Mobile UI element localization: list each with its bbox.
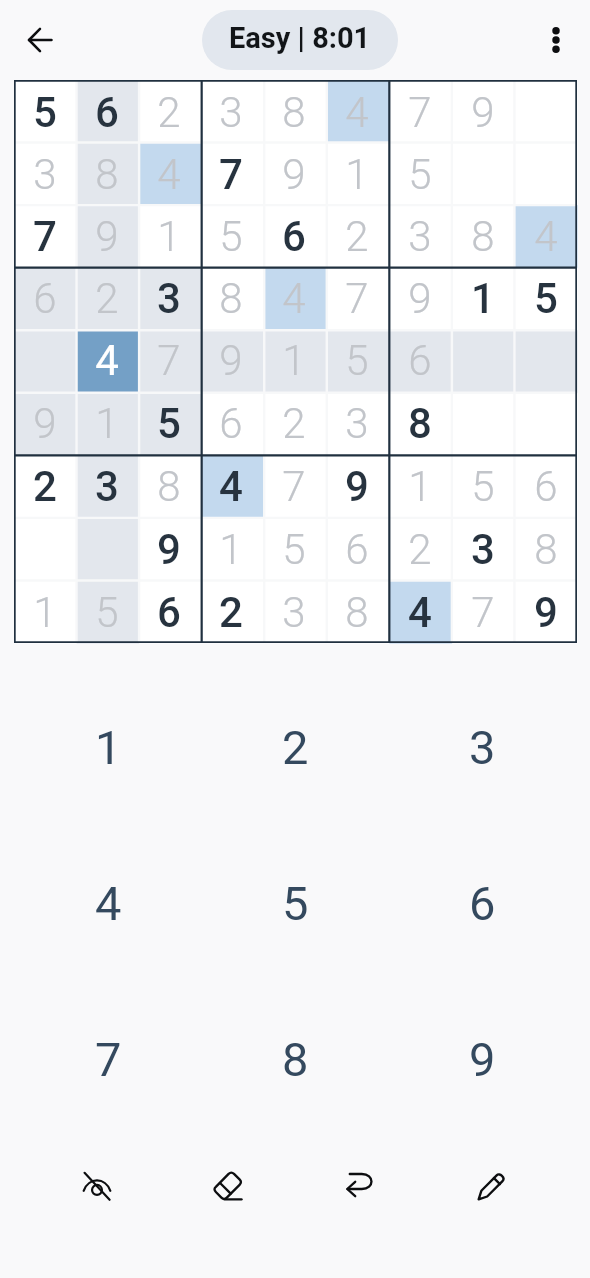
- button[interactable]: 7: [262, 454, 325, 517]
- staticText: 6: [33, 274, 57, 323]
- button[interactable]: 3: [389, 669, 576, 825]
- button[interactable]: [451, 328, 514, 391]
- button[interactable]: 8: [262, 80, 325, 142]
- button[interactable]: 2: [14, 454, 76, 517]
- button[interactable]: 8: [138, 454, 200, 517]
- button[interactable]: 4: [200, 454, 262, 517]
- button[interactable]: 7: [388, 80, 451, 142]
- button[interactable]: Notes: [426, 1156, 558, 1216]
- button[interactable]: 6: [262, 204, 325, 266]
- button[interactable]: 8: [325, 580, 388, 643]
- staticText: 3: [408, 212, 432, 261]
- button[interactable]: 1: [325, 142, 388, 204]
- button[interactable]: 4: [14, 825, 202, 981]
- button[interactable]: Easy | 8:01: [202, 10, 398, 70]
- button[interactable]: 5: [514, 266, 577, 328]
- button[interactable]: 7: [14, 981, 202, 1137]
- button[interactable]: 3: [138, 266, 200, 328]
- button[interactable]: 6: [200, 391, 262, 454]
- button[interactable]: 9: [262, 142, 325, 204]
- button[interactable]: [514, 142, 577, 204]
- button[interactable]: 3: [388, 204, 451, 266]
- button[interactable]: 3: [76, 454, 138, 517]
- button[interactable]: 5: [262, 517, 325, 580]
- button[interactable]: 1: [138, 204, 200, 266]
- button[interactable]: 9: [451, 80, 514, 142]
- button[interactable]: 4: [514, 204, 577, 266]
- button[interactable]: 8: [451, 204, 514, 266]
- button[interactable]: [514, 80, 577, 142]
- button[interactable]: 6: [14, 266, 76, 328]
- button[interactable]: 2: [325, 204, 388, 266]
- button[interactable]: 1: [200, 517, 262, 580]
- button[interactable]: 1: [388, 454, 451, 517]
- button[interactable]: 1: [14, 580, 76, 643]
- button[interactable]: 7: [14, 204, 76, 266]
- button[interactable]: [514, 328, 577, 391]
- button[interactable]: 4: [388, 580, 451, 643]
- button[interactable]: 9: [325, 454, 388, 517]
- button[interactable]: Erase: [162, 1156, 294, 1216]
- button[interactable]: 5: [200, 204, 262, 266]
- button[interactable]: 8: [76, 142, 138, 204]
- button[interactable]: 9: [138, 517, 200, 580]
- button[interactable]: 2: [262, 391, 325, 454]
- button[interactable]: 9: [388, 266, 451, 328]
- button[interactable]: 9: [14, 391, 76, 454]
- button[interactable]: 8: [202, 981, 389, 1137]
- button[interactable]: [76, 517, 138, 580]
- button[interactable]: 1: [14, 669, 202, 825]
- button[interactable]: 4: [325, 80, 388, 142]
- button[interactable]: 1: [451, 266, 514, 328]
- button[interactable]: 2: [200, 580, 262, 643]
- button[interactable]: 5: [202, 825, 389, 981]
- button[interactable]: 6: [138, 580, 200, 643]
- button[interactable]: More options: [530, 14, 582, 66]
- button[interactable]: Back: [14, 14, 66, 66]
- button[interactable]: 8: [200, 266, 262, 328]
- staticText: 5: [345, 336, 369, 385]
- button[interactable]: 5: [76, 580, 138, 643]
- button[interactable]: 4: [138, 142, 200, 204]
- button[interactable]: 5: [14, 80, 76, 142]
- button[interactable]: [14, 328, 76, 391]
- button[interactable]: 9: [389, 981, 576, 1137]
- button[interactable]: 7: [451, 580, 514, 643]
- button[interactable]: 2: [388, 517, 451, 580]
- button[interactable]: 1: [76, 391, 138, 454]
- button[interactable]: 8: [388, 391, 451, 454]
- button[interactable]: 2: [202, 669, 389, 825]
- button[interactable]: 5: [138, 391, 200, 454]
- button[interactable]: 9: [76, 204, 138, 266]
- button[interactable]: [514, 391, 577, 454]
- button[interactable]: 3: [451, 517, 514, 580]
- button[interactable]: 1: [262, 328, 325, 391]
- button[interactable]: 7: [325, 266, 388, 328]
- button[interactable]: 9: [200, 328, 262, 391]
- button[interactable]: 6: [76, 80, 138, 142]
- button[interactable]: 7: [138, 328, 200, 391]
- button[interactable]: 6: [389, 825, 576, 981]
- button[interactable]: 3: [325, 391, 388, 454]
- button[interactable]: 9: [514, 580, 577, 643]
- button[interactable]: 8: [514, 517, 577, 580]
- button[interactable]: 3: [14, 142, 76, 204]
- button[interactable]: 2: [76, 266, 138, 328]
- button[interactable]: Undo: [294, 1156, 426, 1216]
- button[interactable]: 3: [262, 580, 325, 643]
- button[interactable]: [14, 517, 76, 580]
- button[interactable]: 3: [200, 80, 262, 142]
- button[interactable]: 6: [514, 454, 577, 517]
- button[interactable]: 7: [200, 142, 262, 204]
- button[interactable]: Hide notes: [31, 1156, 162, 1216]
- button[interactable]: 4: [76, 328, 138, 391]
- button[interactable]: 6: [388, 328, 451, 391]
- button[interactable]: 4: [262, 266, 325, 328]
- button[interactable]: 5: [325, 328, 388, 391]
- button[interactable]: 2: [138, 80, 200, 142]
- button[interactable]: 6: [325, 517, 388, 580]
- button[interactable]: 5: [388, 142, 451, 204]
- button[interactable]: 5: [451, 454, 514, 517]
